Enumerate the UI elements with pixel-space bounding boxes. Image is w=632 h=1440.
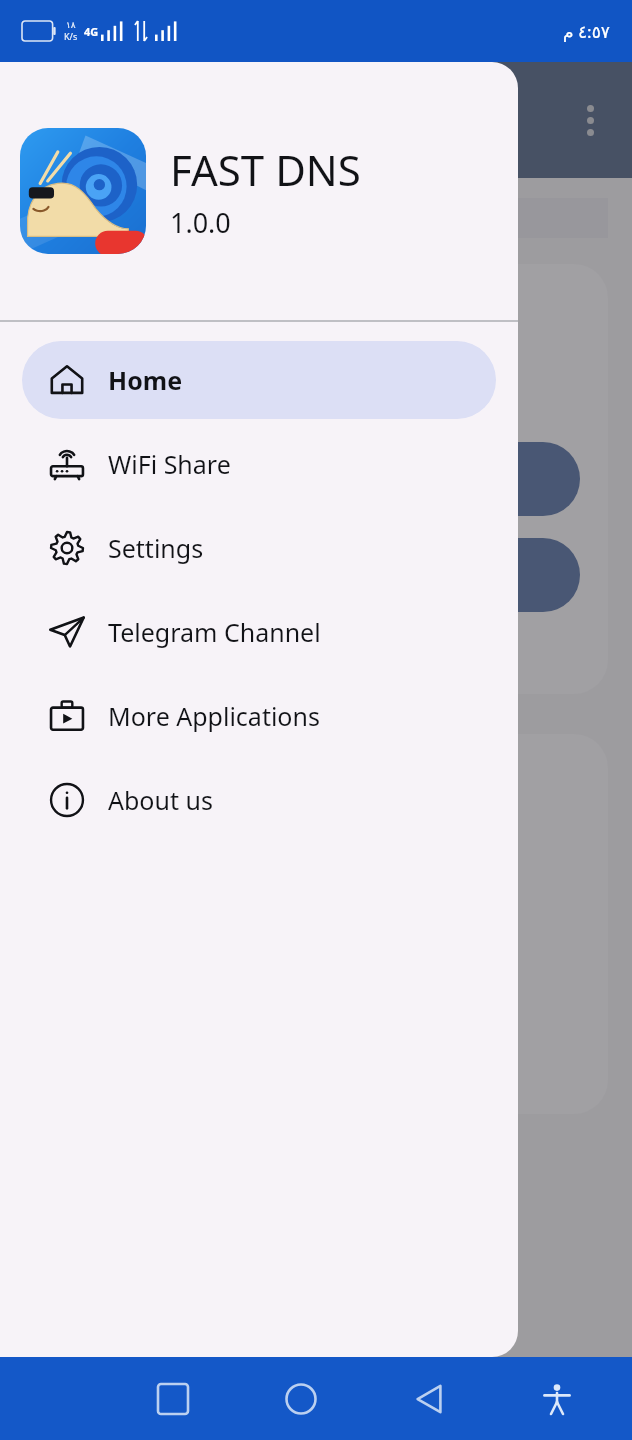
staticText: 4G [84,24,99,39]
button[interactable]: Back [394,1364,464,1434]
staticText: K/s [64,30,78,42]
button[interactable]: About us [22,762,496,838]
staticText: ١٨ [66,20,76,30]
staticText: 1.0.0 [170,204,231,241]
staticText: Home [108,363,183,397]
button[interactable]: Home [266,1364,336,1434]
button[interactable]: Home [22,341,496,419]
staticText: About us [108,783,213,817]
staticText: Telegram Channel [108,615,321,649]
button[interactable]: Recent apps [138,1364,208,1434]
staticText: FAST DNS [170,141,361,198]
staticText: ٤:٥٧ م [563,20,610,43]
button[interactable]: More Applications [22,678,496,754]
staticText: Settings [108,531,204,565]
button[interactable]: Accessibility menu [522,1364,592,1434]
button[interactable]: Telegram Channel [22,594,496,670]
staticText: 0.00 KB [52,292,130,322]
button[interactable]: WiFi Share [22,426,496,502]
staticText: More Applications [108,699,320,733]
button[interactable]: Settings [22,510,496,586]
staticText: WiFi Share [108,447,231,481]
